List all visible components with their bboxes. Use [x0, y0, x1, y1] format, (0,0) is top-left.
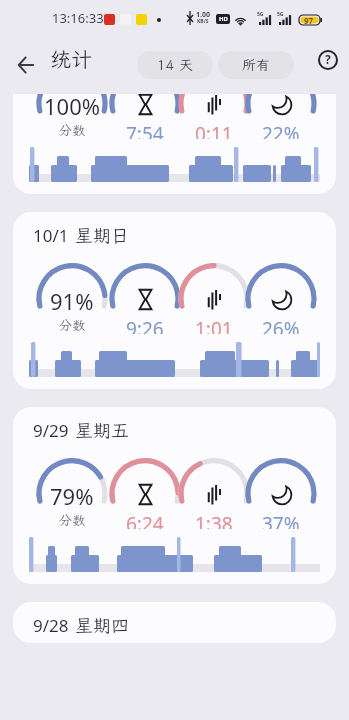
staticText: 14 天	[157, 56, 193, 74]
staticText: 100%	[44, 94, 101, 117]
button[interactable]: 10/1	[13, 212, 336, 389]
staticText: 37%	[262, 511, 300, 529]
staticText: 10/1	[33, 224, 69, 247]
staticText: 9/28	[33, 614, 69, 637]
staticText: 星期五	[75, 418, 129, 442]
staticText: 1:38	[195, 511, 233, 529]
staticText: 22%	[262, 121, 300, 139]
staticText: 统计	[50, 45, 92, 73]
staticText: 97	[304, 15, 314, 26]
staticText: 0:11	[195, 121, 233, 139]
staticText: 分数	[59, 317, 86, 334]
staticText: 13:16:33	[52, 9, 104, 27]
button[interactable]: Help	[313, 45, 342, 74]
button[interactable]: 100%	[13, 94, 336, 194]
staticText: 分数	[59, 512, 86, 529]
staticText: 星期日	[75, 223, 129, 247]
button[interactable]: 9/28	[13, 602, 336, 643]
staticText: 91%	[50, 286, 94, 312]
staticText: 1.00	[196, 10, 210, 20]
staticText: 星期四	[75, 613, 129, 637]
button[interactable]: 9/29	[13, 407, 336, 584]
staticText: KB/S	[197, 18, 209, 25]
button[interactable]: 14 天	[137, 51, 213, 79]
staticText: 1:01	[195, 316, 233, 334]
staticText: 79%	[50, 481, 94, 507]
staticText: 9:26	[126, 316, 164, 334]
staticText: 5G	[257, 11, 264, 18]
staticText: 9/29	[33, 419, 69, 442]
button[interactable]: Back	[8, 47, 43, 82]
staticText: HD	[219, 15, 228, 23]
staticText: 分数	[59, 122, 86, 139]
staticText: ?	[325, 51, 331, 67]
staticText: 5G	[277, 11, 284, 18]
staticText: 6:24	[126, 511, 164, 529]
staticText: 26%	[262, 316, 300, 334]
button[interactable]: 所有	[218, 51, 294, 79]
staticText: 所有	[242, 56, 270, 74]
staticText: 7:54	[126, 121, 164, 139]
